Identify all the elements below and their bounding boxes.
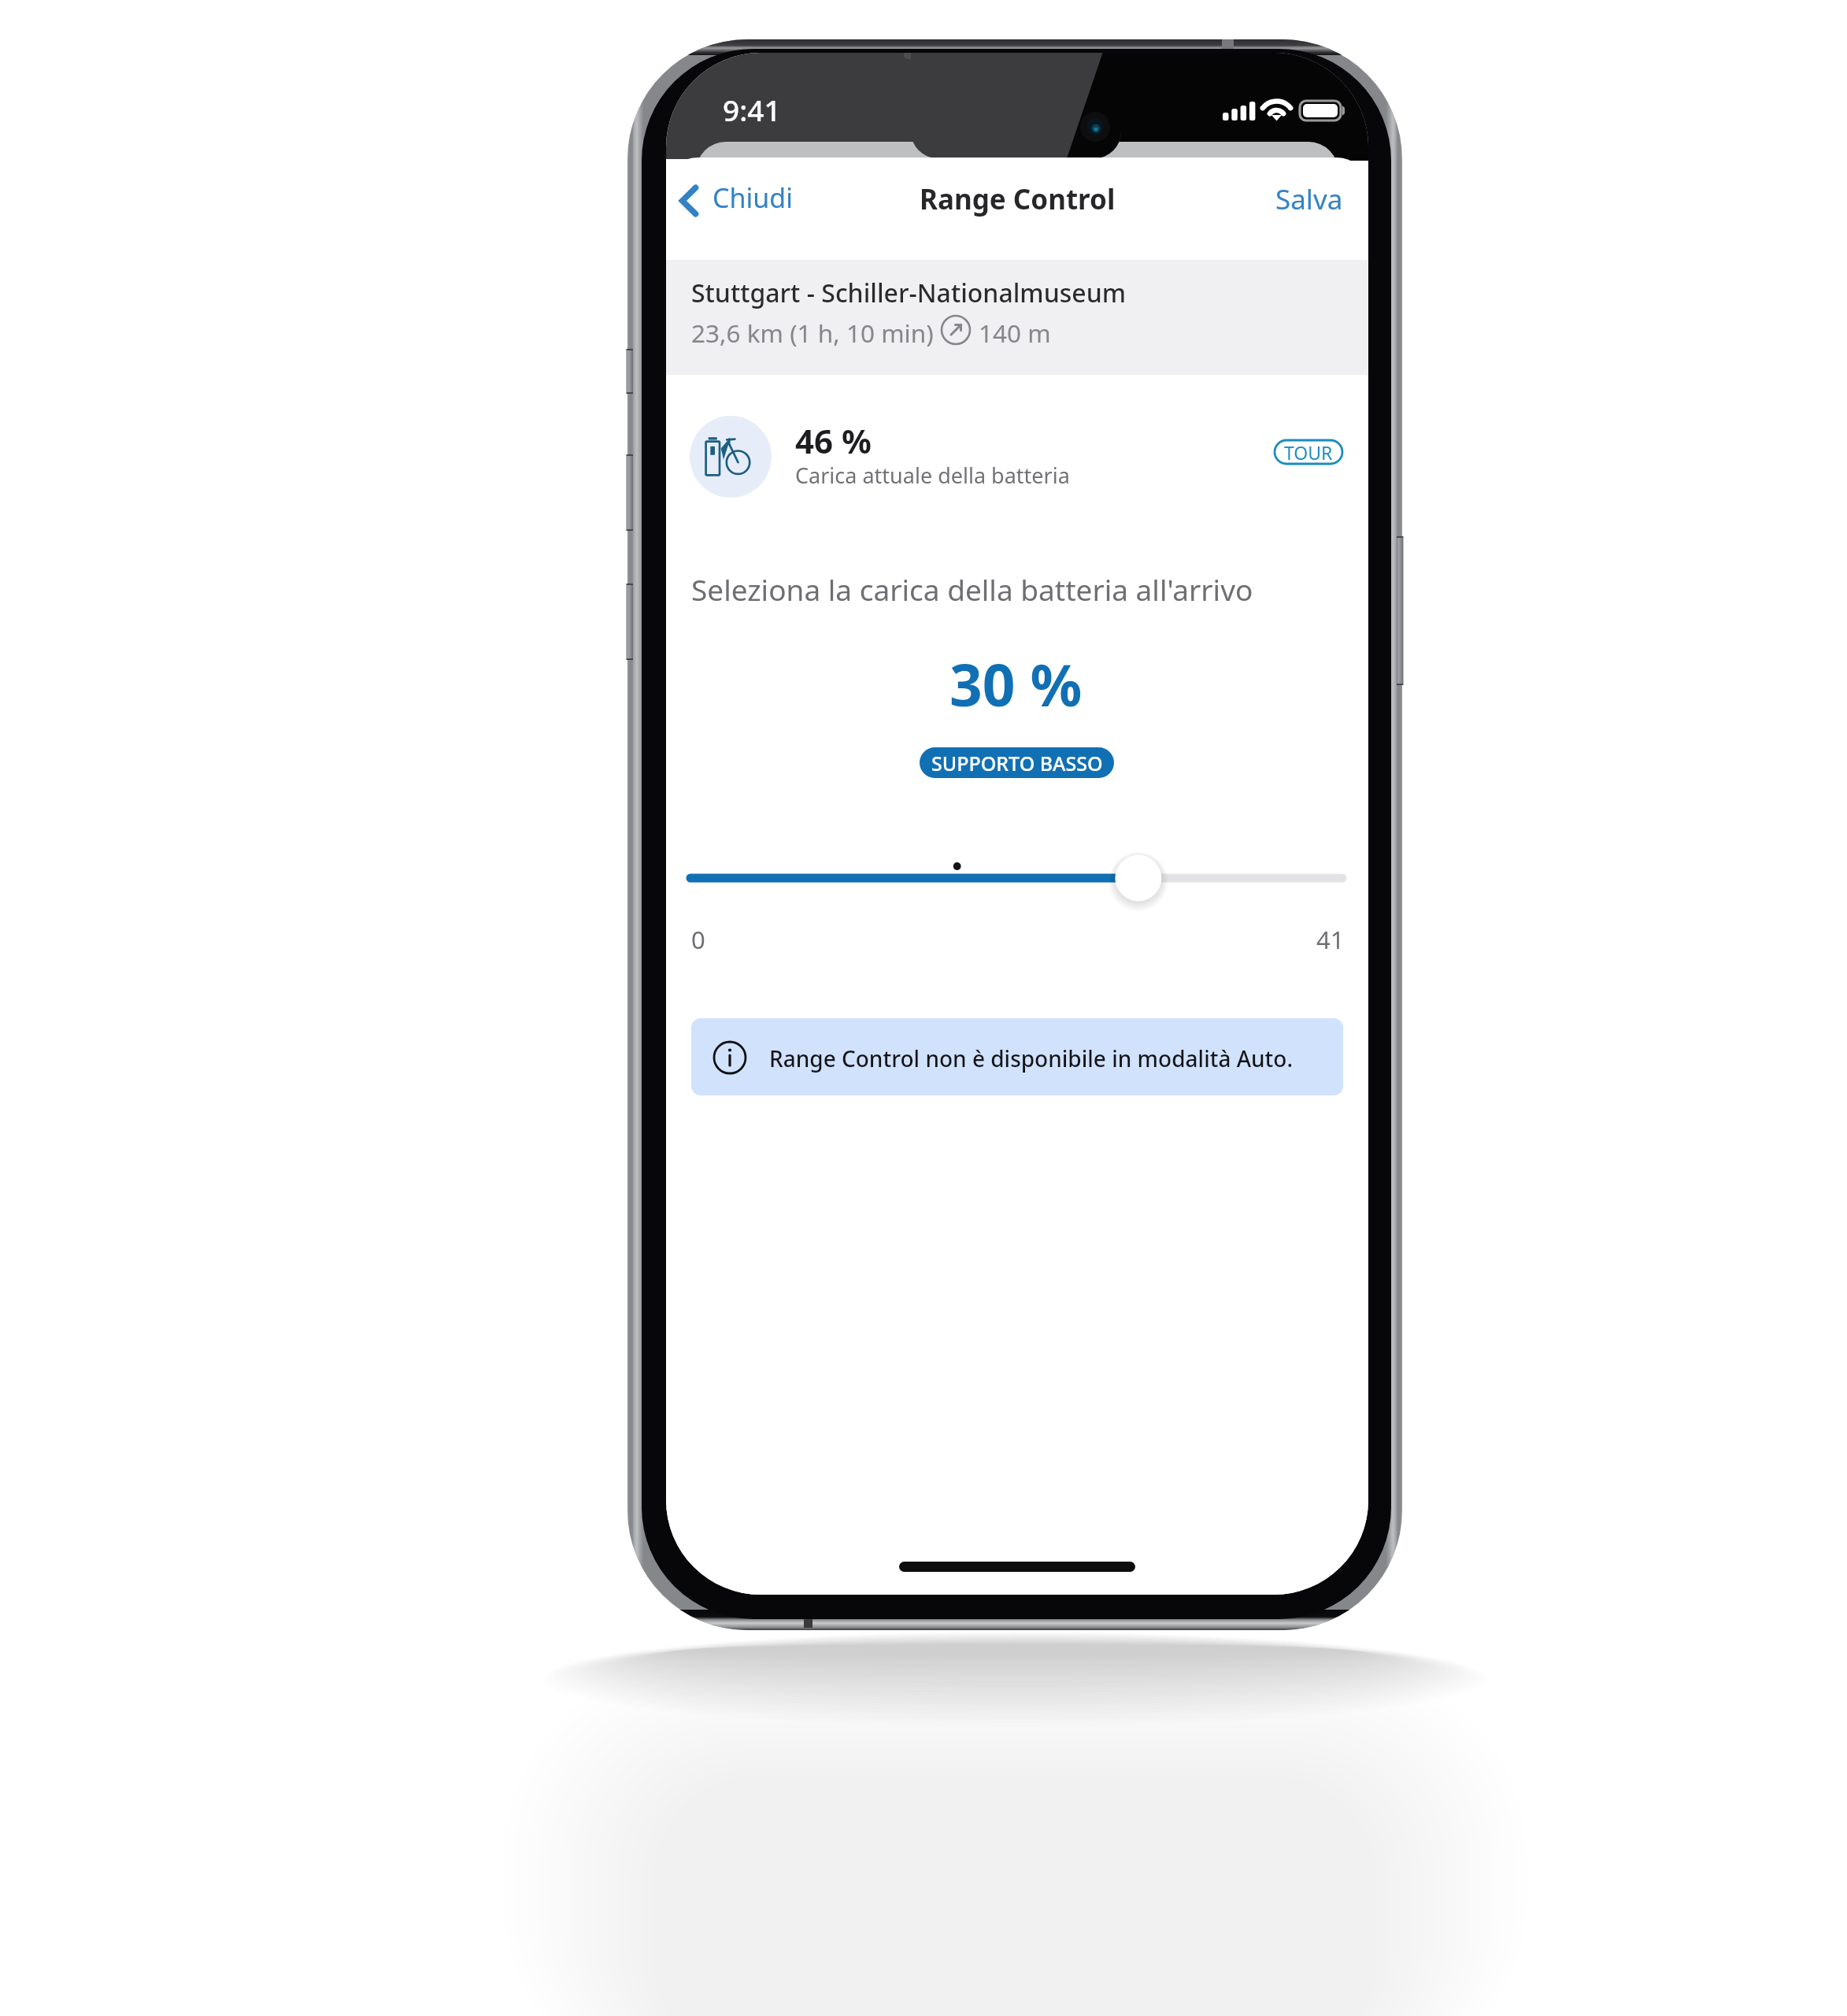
button[interactable]: Salva (1267, 175, 1352, 224)
staticText: 41 (1316, 923, 1345, 956)
staticText: Range Control non è disponibile in modal… (769, 1043, 1294, 1073)
staticText: Seleziona la carica della batteria all'a… (691, 569, 1253, 609)
staticText: 30 % (949, 645, 1083, 723)
button[interactable]: Route details (666, 260, 1368, 375)
staticText: TOUR (1284, 440, 1333, 464)
staticText: Carica attuale della batteria (795, 461, 1070, 490)
staticText: Salva (1275, 180, 1343, 218)
staticText: 46 % (795, 418, 872, 463)
button[interactable]: Arrival battery charge slider (691, 849, 1343, 907)
button[interactable]: Close (673, 175, 798, 224)
button[interactable]: TOUR (1275, 440, 1342, 464)
staticText: Stuttgart - Schiller-Nationalmuseum (691, 276, 1127, 310)
staticText: SUPPORTO BASSO (931, 750, 1103, 776)
staticText: Chiudi (713, 180, 793, 216)
staticText: 23,6 km (1 h, 10 min) (691, 316, 934, 350)
button[interactable]: Information (691, 1018, 1343, 1095)
staticText: 0 (691, 923, 705, 956)
button[interactable]: SUPPORTO BASSO (920, 747, 1114, 778)
staticText: 9:41 (723, 90, 781, 129)
staticText: 140 m (979, 316, 1051, 350)
staticText: Range Control (920, 180, 1116, 218)
